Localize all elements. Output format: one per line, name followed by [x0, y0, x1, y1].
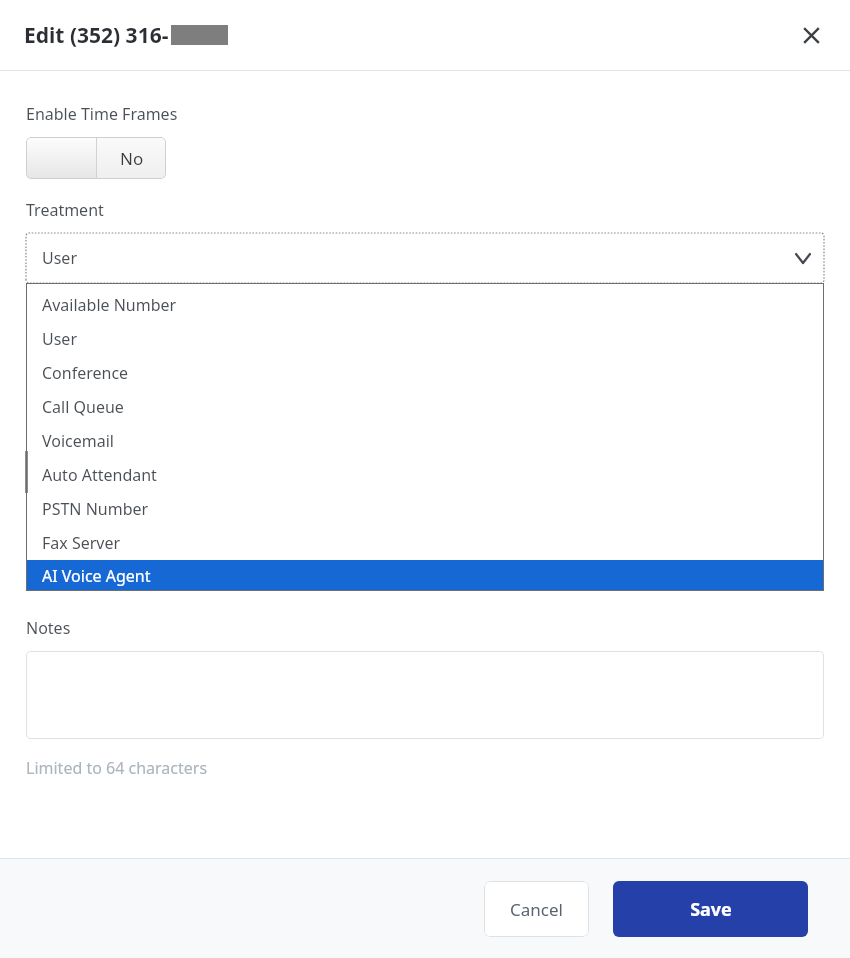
button[interactable]: Available Number: [26, 288, 824, 322]
staticText: User: [42, 328, 77, 350]
button[interactable]: Call Queue: [26, 390, 824, 424]
button[interactable]: User: [26, 322, 824, 356]
button[interactable]: Conference: [26, 356, 824, 390]
staticText: Fax Server: [42, 532, 121, 554]
button[interactable]: Voicemail: [26, 424, 824, 458]
button[interactable]: Close: [792, 16, 830, 54]
staticText: Conference: [42, 362, 129, 384]
button[interactable]: Auto Attendant: [26, 458, 824, 492]
staticText: Call Queue: [42, 396, 124, 418]
button[interactable]: Fax Server: [26, 526, 824, 560]
staticText: Enable Time Frames: [26, 103, 178, 125]
button[interactable]: Notes input: [26, 651, 824, 739]
staticText: Edit (352) 316-: [24, 21, 169, 50]
staticText: Available Number: [42, 294, 177, 316]
staticText: PSTN Number: [42, 498, 149, 520]
button[interactable]: Cancel: [484, 881, 589, 937]
staticText: Treatment: [26, 199, 104, 221]
button[interactable]: Enable Time Frames toggle, off: [26, 137, 166, 179]
staticText: AI Voice Agent: [42, 565, 151, 587]
staticText: Notes: [26, 617, 71, 639]
staticText: Voicemail: [42, 430, 114, 452]
staticText: User: [42, 247, 77, 269]
staticText: No: [120, 147, 144, 170]
button[interactable]: AI Voice Agent: [26, 560, 824, 591]
staticText: Cancel: [510, 898, 563, 921]
staticText: Save: [690, 897, 732, 922]
button[interactable]: Save: [613, 881, 808, 937]
staticText: Auto Attendant: [42, 464, 157, 486]
button[interactable]: PSTN Number: [26, 492, 824, 526]
button[interactable]: User: [26, 233, 824, 283]
staticText: Limited to 64 characters: [26, 757, 208, 779]
